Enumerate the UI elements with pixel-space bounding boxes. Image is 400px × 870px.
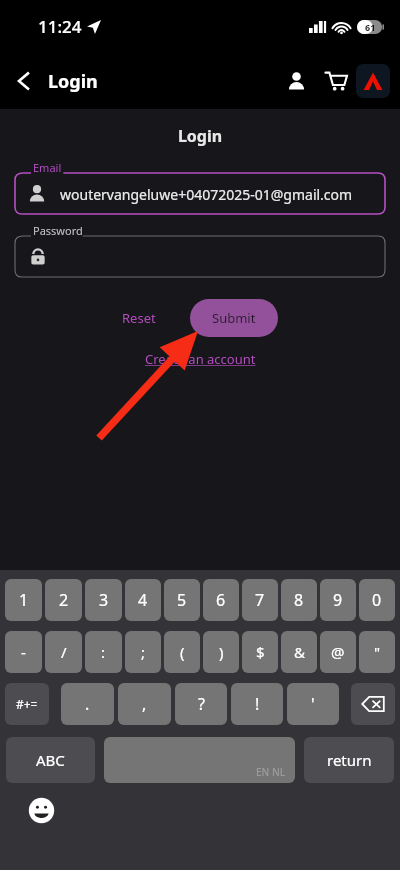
staticText: 8 [294, 589, 304, 611]
staticText: EN NL [256, 765, 286, 779]
button[interactable]: Reset [112, 301, 166, 335]
button[interactable]: return [304, 737, 394, 783]
button[interactable]: 4 [125, 579, 161, 621]
button[interactable]: $ [242, 631, 278, 673]
staticText: 0 [372, 589, 382, 611]
button[interactable]: 5 [164, 579, 200, 621]
button[interactable]: 0 [359, 579, 395, 621]
button[interactable]: ( [164, 631, 200, 673]
staticText: ( [180, 642, 185, 662]
staticText: , [142, 693, 147, 715]
button[interactable]: 6 [203, 579, 239, 621]
button[interactable]: Adobe [356, 64, 390, 98]
button[interactable]: / [45, 631, 82, 673]
staticText: 61 [365, 21, 376, 33]
staticText: . [85, 693, 90, 715]
staticText: 7 [255, 589, 265, 611]
staticText: ! [255, 693, 260, 715]
staticText: Password [33, 223, 83, 238]
staticText: ; [141, 642, 146, 662]
button[interactable]: #+= [5, 683, 49, 725]
button[interactable]: ! [231, 683, 283, 725]
staticText: Email [33, 160, 62, 175]
button[interactable]: Submit [190, 299, 278, 337]
button[interactable]: " [359, 631, 395, 673]
staticText: - [21, 642, 26, 662]
staticText: 4 [138, 589, 148, 611]
button[interactable]: ) [203, 631, 239, 673]
staticText: Login [0, 125, 400, 147]
button[interactable]: Account [276, 61, 316, 101]
button[interactable]: Emoji [26, 795, 56, 825]
button[interactable]: 9 [320, 579, 356, 621]
button[interactable]: Space [104, 737, 295, 783]
staticText: @ [331, 642, 345, 662]
button[interactable]: : [85, 631, 122, 673]
button[interactable]: 7 [242, 579, 278, 621]
staticText: #+= [16, 696, 38, 712]
button[interactable]: Back [0, 57, 48, 105]
staticText: 5 [177, 589, 187, 611]
staticText: 6 [216, 589, 226, 611]
button[interactable]: 2 [45, 579, 82, 621]
button[interactable]: ABC [6, 737, 95, 783]
staticText: : [101, 642, 106, 662]
button[interactable]: Backspace [351, 683, 395, 725]
staticText: Create an account [145, 350, 256, 368]
staticText: return [327, 750, 372, 770]
staticText: ' [311, 693, 315, 715]
button[interactable]: Create an account [142, 347, 259, 371]
staticText: 1 [19, 589, 29, 611]
button[interactable]: . [61, 683, 114, 725]
staticText: 11:24 [38, 15, 82, 38]
staticText: Reset [122, 309, 156, 327]
button[interactable]: Cart [316, 61, 356, 101]
button[interactable]: ; [125, 631, 161, 673]
button[interactable]: 1 [5, 579, 42, 621]
staticText: ? [198, 693, 205, 715]
staticText: Login [48, 69, 98, 94]
staticText: & [294, 642, 305, 662]
button[interactable]: ' [287, 683, 339, 725]
staticText: ) [219, 642, 224, 662]
button[interactable]: ? [175, 683, 227, 725]
staticText: ABC [36, 750, 65, 770]
staticText: " [374, 642, 381, 662]
button[interactable]: @ [320, 631, 356, 673]
staticText: 9 [333, 589, 343, 611]
button[interactable]: 3 [85, 579, 122, 621]
staticText: woutervangeluwe+04072025-01@gmail.com [60, 185, 353, 204]
staticText: 2 [59, 589, 69, 611]
staticText: $ [256, 642, 265, 662]
button[interactable]: & [281, 631, 317, 673]
button[interactable]: , [118, 683, 171, 725]
staticText: Submit [212, 309, 256, 327]
button[interactable]: 8 [281, 579, 317, 621]
staticText: 3 [99, 589, 109, 611]
staticText: / [61, 642, 67, 662]
button[interactable]: - [5, 631, 42, 673]
